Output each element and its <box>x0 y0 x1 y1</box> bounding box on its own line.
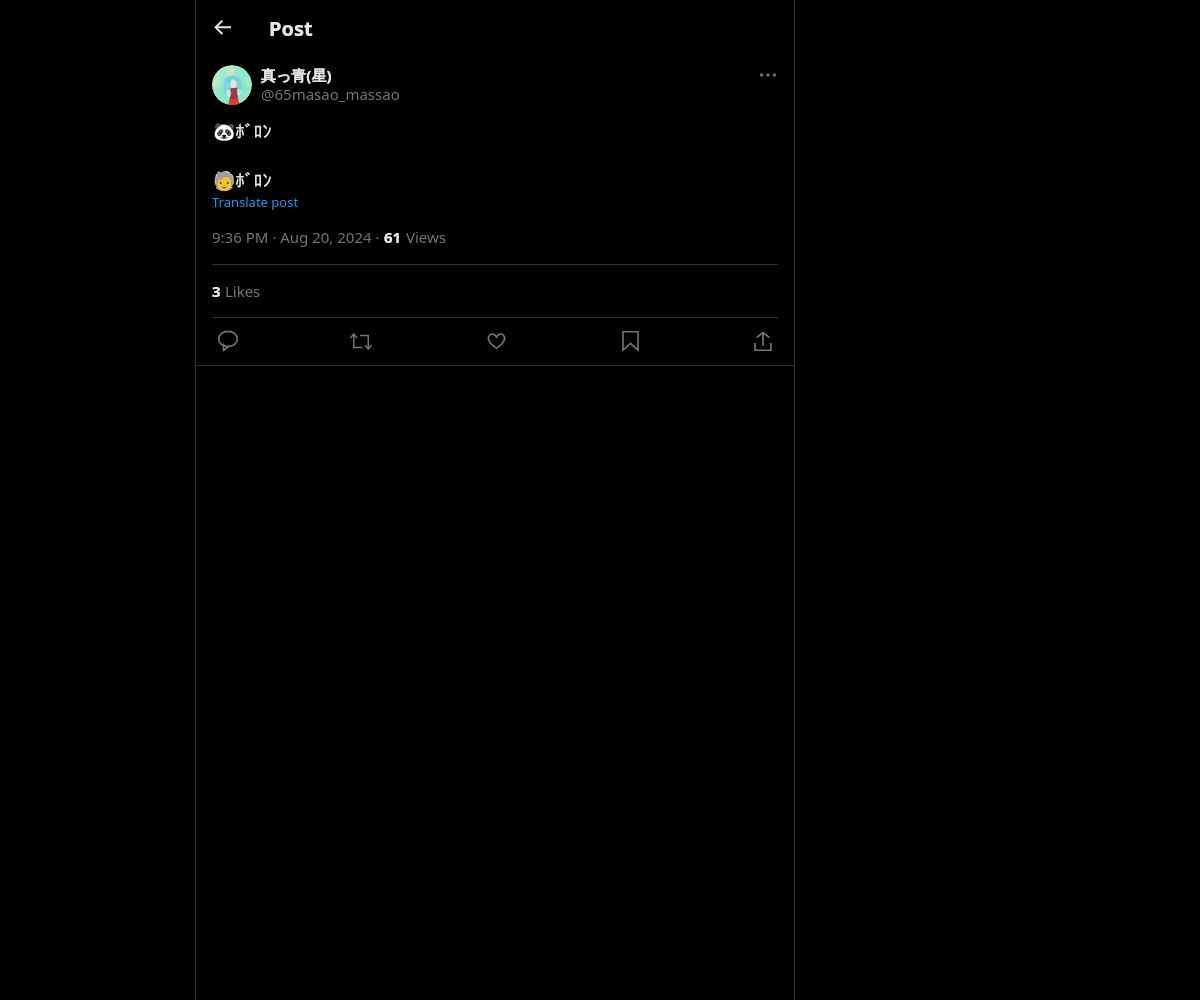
staticText: @65masao_massao <box>261 84 400 104</box>
staticText: 🐼ﾎﾞﾛﾝ <box>213 121 272 142</box>
staticText: Views <box>402 227 446 247</box>
staticText: 真っ青(星) <box>261 65 332 85</box>
staticText: Post <box>269 15 313 42</box>
staticText: Translate post <box>212 193 299 211</box>
staticText: 🧓ﾎﾞﾛﾝ <box>213 170 272 191</box>
button[interactable]: Translate post <box>212 193 299 211</box>
button[interactable]: 3 <box>212 269 261 313</box>
button[interactable]: More options <box>750 57 786 93</box>
button[interactable]: Like <box>478 323 514 359</box>
staticText: Likes <box>221 281 261 301</box>
button[interactable]: Share <box>745 323 781 359</box>
button[interactable]: Repost <box>343 323 379 359</box>
button[interactable]: Reply <box>210 323 246 359</box>
staticText: 61 <box>384 227 402 247</box>
button[interactable]: Back <box>205 9 241 45</box>
staticText: 3 <box>212 281 221 301</box>
staticText: 9:36 PM · Aug 20, 2024 · <box>212 227 384 247</box>
button[interactable]: Profile picture <box>212 65 252 105</box>
button[interactable]: Bookmark <box>612 323 648 359</box>
